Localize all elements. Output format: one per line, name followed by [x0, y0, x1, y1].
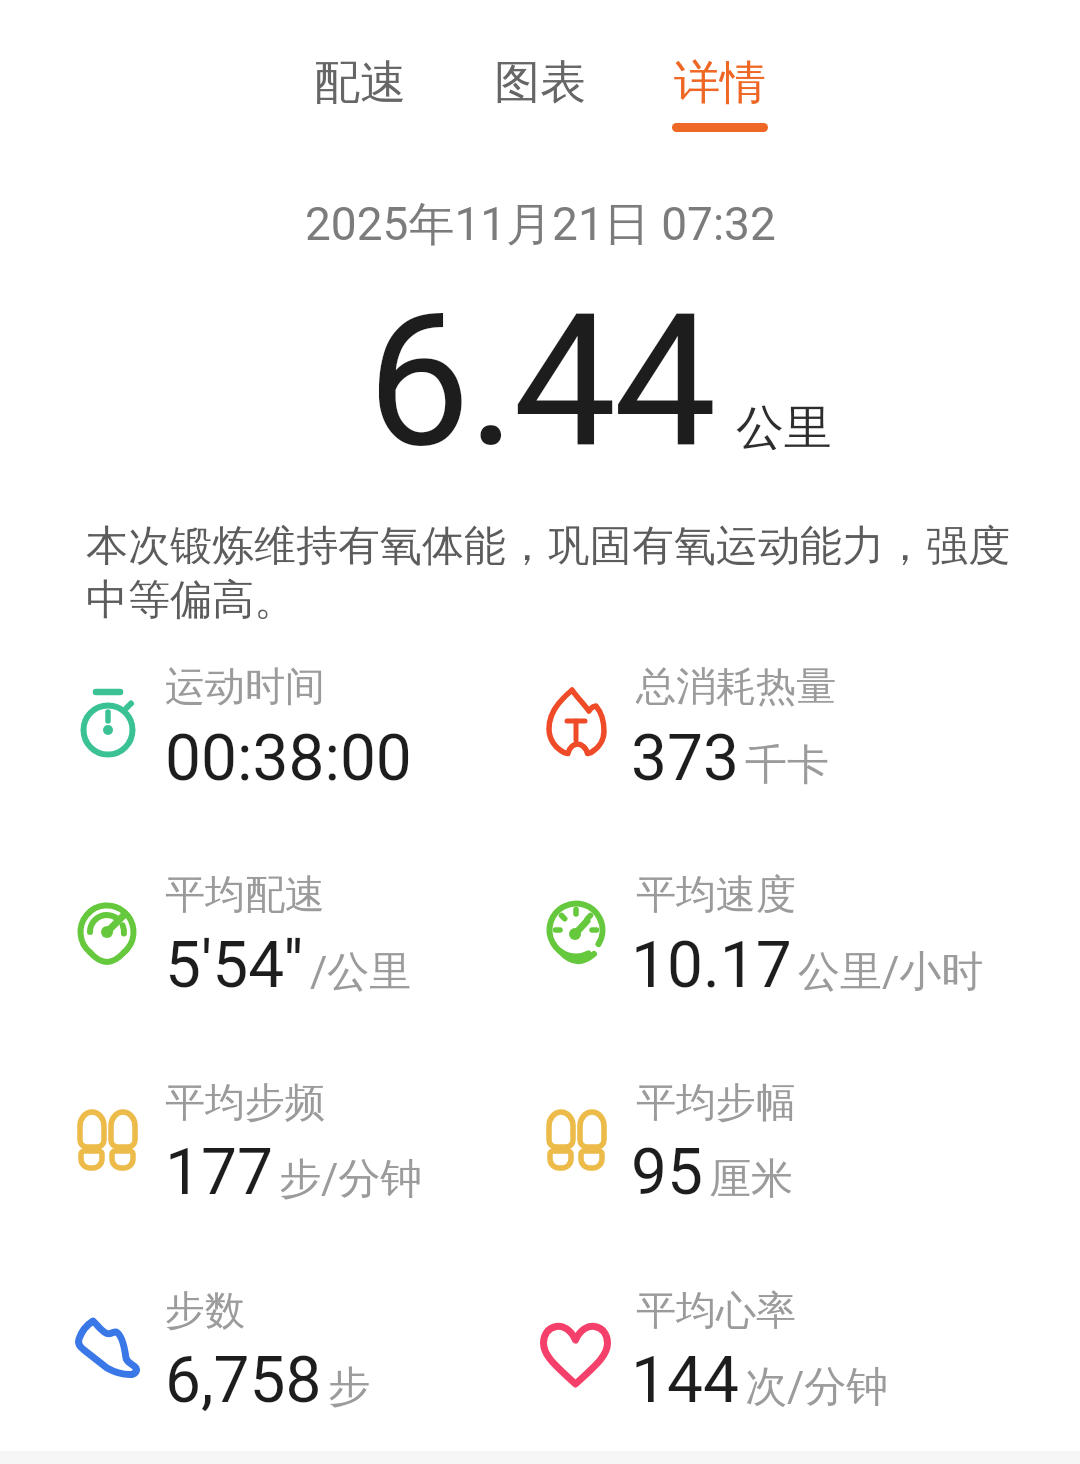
- staticText: 总消耗热量: [636, 661, 836, 709]
- button[interactable]: 配速: [290, 47, 430, 119]
- staticText: 配速: [314, 54, 406, 112]
- staticText: /公里: [310, 946, 412, 999]
- staticText: 10.17: [631, 928, 792, 1003]
- staticText: 步数: [165, 1285, 245, 1333]
- staticText: 平均速度: [636, 869, 796, 917]
- staticText: 373: [631, 721, 739, 796]
- staticText: 6.44: [367, 273, 714, 458]
- staticText: 中等偏高。: [86, 574, 296, 627]
- staticText: 00:38:00: [165, 721, 412, 796]
- staticText: 177: [165, 1135, 273, 1210]
- staticText: 公里: [736, 398, 832, 450]
- staticText: 平均步频: [165, 1077, 325, 1125]
- staticText: 次/分钟: [745, 1361, 889, 1414]
- staticText: 平均心率: [636, 1285, 796, 1333]
- staticText: 步/分钟: [279, 1153, 423, 1206]
- staticText: 详情: [674, 54, 766, 112]
- staticText: 本次锻炼维持有氧体能，巩固有氧运动能力，强度: [86, 520, 1010, 573]
- button[interactable]: 图表: [470, 47, 610, 119]
- staticText: 2025年11月21日 07:32: [305, 196, 776, 252]
- staticText: 千卡: [745, 739, 829, 792]
- button[interactable]: 详情: [650, 47, 790, 119]
- staticText: 95: [631, 1135, 703, 1210]
- staticText: 运动时间: [165, 661, 325, 709]
- staticText: 6,758: [165, 1343, 322, 1418]
- staticText: 5'54'': [165, 928, 304, 1003]
- staticText: 步: [328, 1361, 370, 1414]
- staticText: 平均配速: [165, 869, 325, 917]
- staticText: 公里/小时: [798, 946, 984, 999]
- staticText: 图表: [494, 54, 586, 112]
- staticText: 平均步幅: [636, 1077, 796, 1125]
- staticText: 144: [631, 1343, 739, 1418]
- staticText: 厘米: [709, 1153, 793, 1206]
